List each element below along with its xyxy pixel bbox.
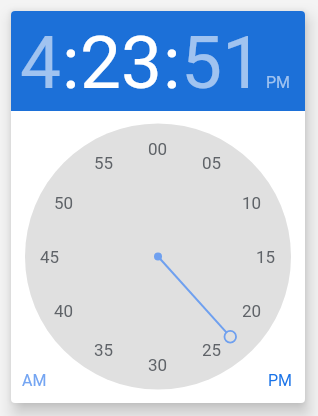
staticText: : <box>62 20 80 106</box>
button[interactable]: 4 <box>20 20 62 106</box>
staticText: 25 <box>202 340 222 360</box>
staticText: AM <box>22 371 47 390</box>
staticText: 20 <box>242 301 262 321</box>
staticText: 00 <box>148 139 168 159</box>
staticText: PM <box>268 371 293 390</box>
staticText: 30 <box>148 355 168 375</box>
staticText: 05 <box>202 153 222 173</box>
staticText: 10 <box>242 193 262 213</box>
staticText: 50 <box>54 193 74 213</box>
button[interactable]: 23 <box>80 20 163 106</box>
staticText: 15 <box>256 247 276 267</box>
staticText: 55 <box>94 153 114 173</box>
staticText: : <box>163 20 181 106</box>
button[interactable]: 51 <box>181 20 264 106</box>
staticText: 40 <box>54 301 74 321</box>
button[interactable]: PM <box>256 368 304 392</box>
button[interactable]: PM <box>266 73 291 92</box>
staticText: 45 <box>40 247 60 267</box>
button[interactable]: AM <box>11 368 58 392</box>
staticText: 35 <box>94 340 114 360</box>
